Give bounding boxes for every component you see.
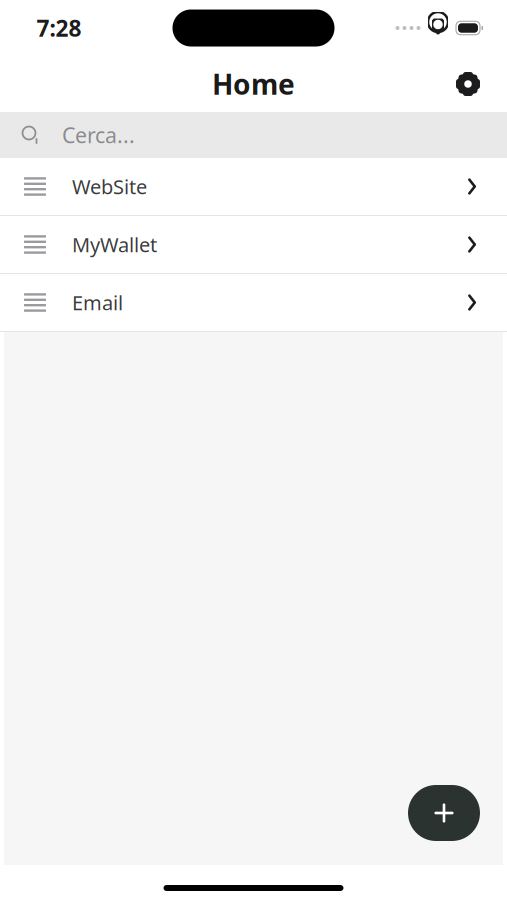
button[interactable]: Settings (442, 58, 494, 110)
staticText: Home (212, 65, 295, 103)
staticText: Email (72, 289, 123, 316)
staticText: 7:28 (36, 13, 81, 43)
staticText: WebSite (72, 173, 147, 200)
button[interactable]: WebSite (0, 158, 507, 216)
button[interactable]: Email (0, 274, 507, 332)
staticText: MyWallet (72, 231, 157, 258)
button[interactable]: Add (408, 785, 480, 841)
staticText: Cerca... (62, 121, 135, 149)
button[interactable]: MyWallet (0, 216, 507, 274)
button[interactable]: Cerca (0, 112, 507, 158)
